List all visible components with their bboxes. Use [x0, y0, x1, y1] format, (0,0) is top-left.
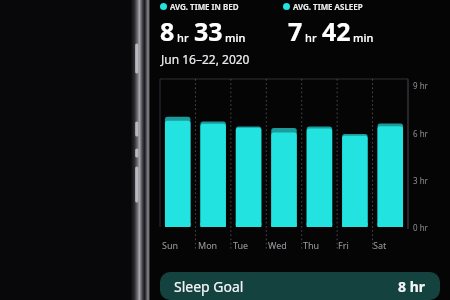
staticText: 0 hr [413, 222, 428, 233]
staticText: Thu [303, 239, 320, 251]
staticText: Sat [373, 239, 387, 251]
staticText: Mon [198, 239, 218, 251]
staticText: hr [305, 30, 317, 45]
staticText: AVG. TIME ASLEEP [293, 1, 363, 12]
staticText: 42 [322, 14, 351, 48]
staticText: Wed [268, 239, 287, 251]
button[interactable]: Sleep Goal [160, 272, 440, 300]
staticText: min [353, 30, 374, 45]
staticText: 8 [160, 14, 175, 48]
staticText: Jun 16–22, 2020 [161, 51, 250, 67]
staticText: Fri [338, 239, 349, 251]
staticText: 3 hr [413, 175, 428, 186]
staticText: Sleep Goal [174, 277, 244, 296]
staticText: Sun [162, 239, 179, 251]
staticText: min [225, 30, 246, 45]
staticText: Tue [233, 239, 249, 251]
staticText: 8 hr [398, 277, 426, 296]
staticText: 9 hr [413, 80, 428, 91]
staticText: hr [177, 30, 189, 45]
staticText: 6 hr [413, 128, 428, 139]
staticText: AVG. TIME IN BED [170, 1, 239, 12]
staticText: 33 [194, 14, 223, 48]
staticText: 7 [288, 14, 303, 48]
